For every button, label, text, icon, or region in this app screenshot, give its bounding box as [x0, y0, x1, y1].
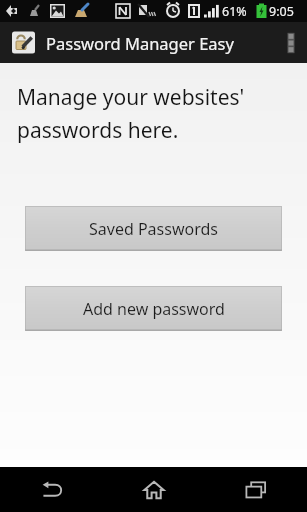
button[interactable]: More options — [275, 22, 307, 63]
staticText: Manage your websites' — [17, 83, 245, 112]
staticText: Add new password — [83, 298, 225, 320]
staticText: Saved Passwords — [89, 218, 218, 240]
staticText: 61% — [222, 3, 247, 20]
button[interactable]: Recent apps — [205, 467, 307, 512]
button[interactable]: Home — [103, 467, 205, 512]
staticText: Password Manager Easy — [46, 32, 234, 54]
button[interactable]: Add new password — [25, 286, 282, 331]
button[interactable]: Back — [0, 467, 103, 512]
staticText: 9:05 — [269, 3, 294, 20]
button[interactable]: Saved Passwords — [25, 206, 282, 251]
staticText: passwords here. — [17, 116, 179, 145]
